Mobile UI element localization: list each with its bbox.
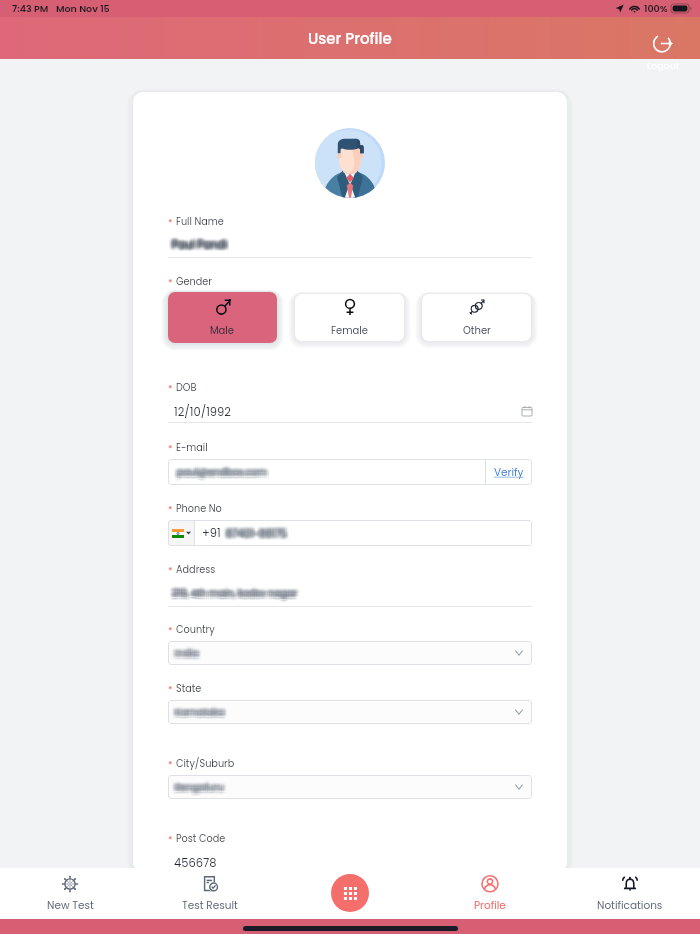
staticText: 456678 bbox=[174, 855, 217, 871]
staticText: * bbox=[168, 684, 173, 697]
staticText: * bbox=[168, 443, 173, 456]
staticText: Test Result bbox=[182, 898, 238, 913]
staticText: * bbox=[168, 834, 173, 847]
button[interactable]: Test Result bbox=[140, 868, 280, 919]
staticText: Notifications bbox=[597, 898, 663, 913]
staticText: * bbox=[168, 504, 173, 517]
staticText: * bbox=[168, 625, 173, 638]
staticText: Other bbox=[463, 323, 491, 337]
staticText: * bbox=[168, 217, 173, 230]
staticText: State bbox=[176, 682, 202, 696]
button[interactable]: Apps menu bbox=[331, 874, 369, 912]
staticText: Verify bbox=[494, 465, 524, 480]
staticText: Gender bbox=[176, 275, 212, 289]
staticText: * bbox=[168, 277, 173, 290]
staticText: Mon Nov 15 bbox=[56, 2, 110, 15]
staticText: Profile bbox=[474, 898, 506, 913]
staticText: Male bbox=[210, 323, 235, 337]
staticText: Logout bbox=[647, 59, 680, 72]
button[interactable]: Logout bbox=[644, 34, 682, 72]
button[interactable]: Select country code bbox=[168, 520, 194, 546]
staticText: Address bbox=[176, 563, 216, 577]
staticText: Phone No bbox=[176, 502, 222, 516]
staticText: * bbox=[168, 383, 173, 396]
staticText: Country bbox=[176, 623, 215, 637]
button[interactable]: Other bbox=[422, 294, 531, 341]
button[interactable]: Male bbox=[168, 292, 277, 343]
staticText: E-mail bbox=[176, 441, 208, 455]
staticText: Post Code bbox=[176, 832, 226, 846]
button[interactable]: Verify bbox=[486, 459, 532, 485]
staticText: New Test bbox=[47, 898, 94, 913]
staticText: User Profile bbox=[308, 28, 392, 49]
button[interactable]: New Test bbox=[0, 868, 140, 919]
button[interactable]: Profile bbox=[420, 868, 560, 919]
staticText: 7:43 PM bbox=[12, 2, 49, 15]
staticText: +91 bbox=[202, 525, 221, 541]
staticText: 100% bbox=[644, 2, 668, 15]
button[interactable]: Notifications bbox=[560, 868, 700, 919]
staticText: DOB bbox=[176, 381, 197, 395]
staticText: City/Suburb bbox=[176, 757, 235, 771]
staticText: Full Name bbox=[176, 215, 224, 229]
staticText: 12/10/1992 bbox=[174, 404, 231, 420]
staticText: Female bbox=[331, 323, 368, 337]
staticText: * bbox=[168, 759, 173, 772]
staticText: * bbox=[168, 565, 173, 578]
button[interactable]: Female bbox=[295, 294, 404, 341]
